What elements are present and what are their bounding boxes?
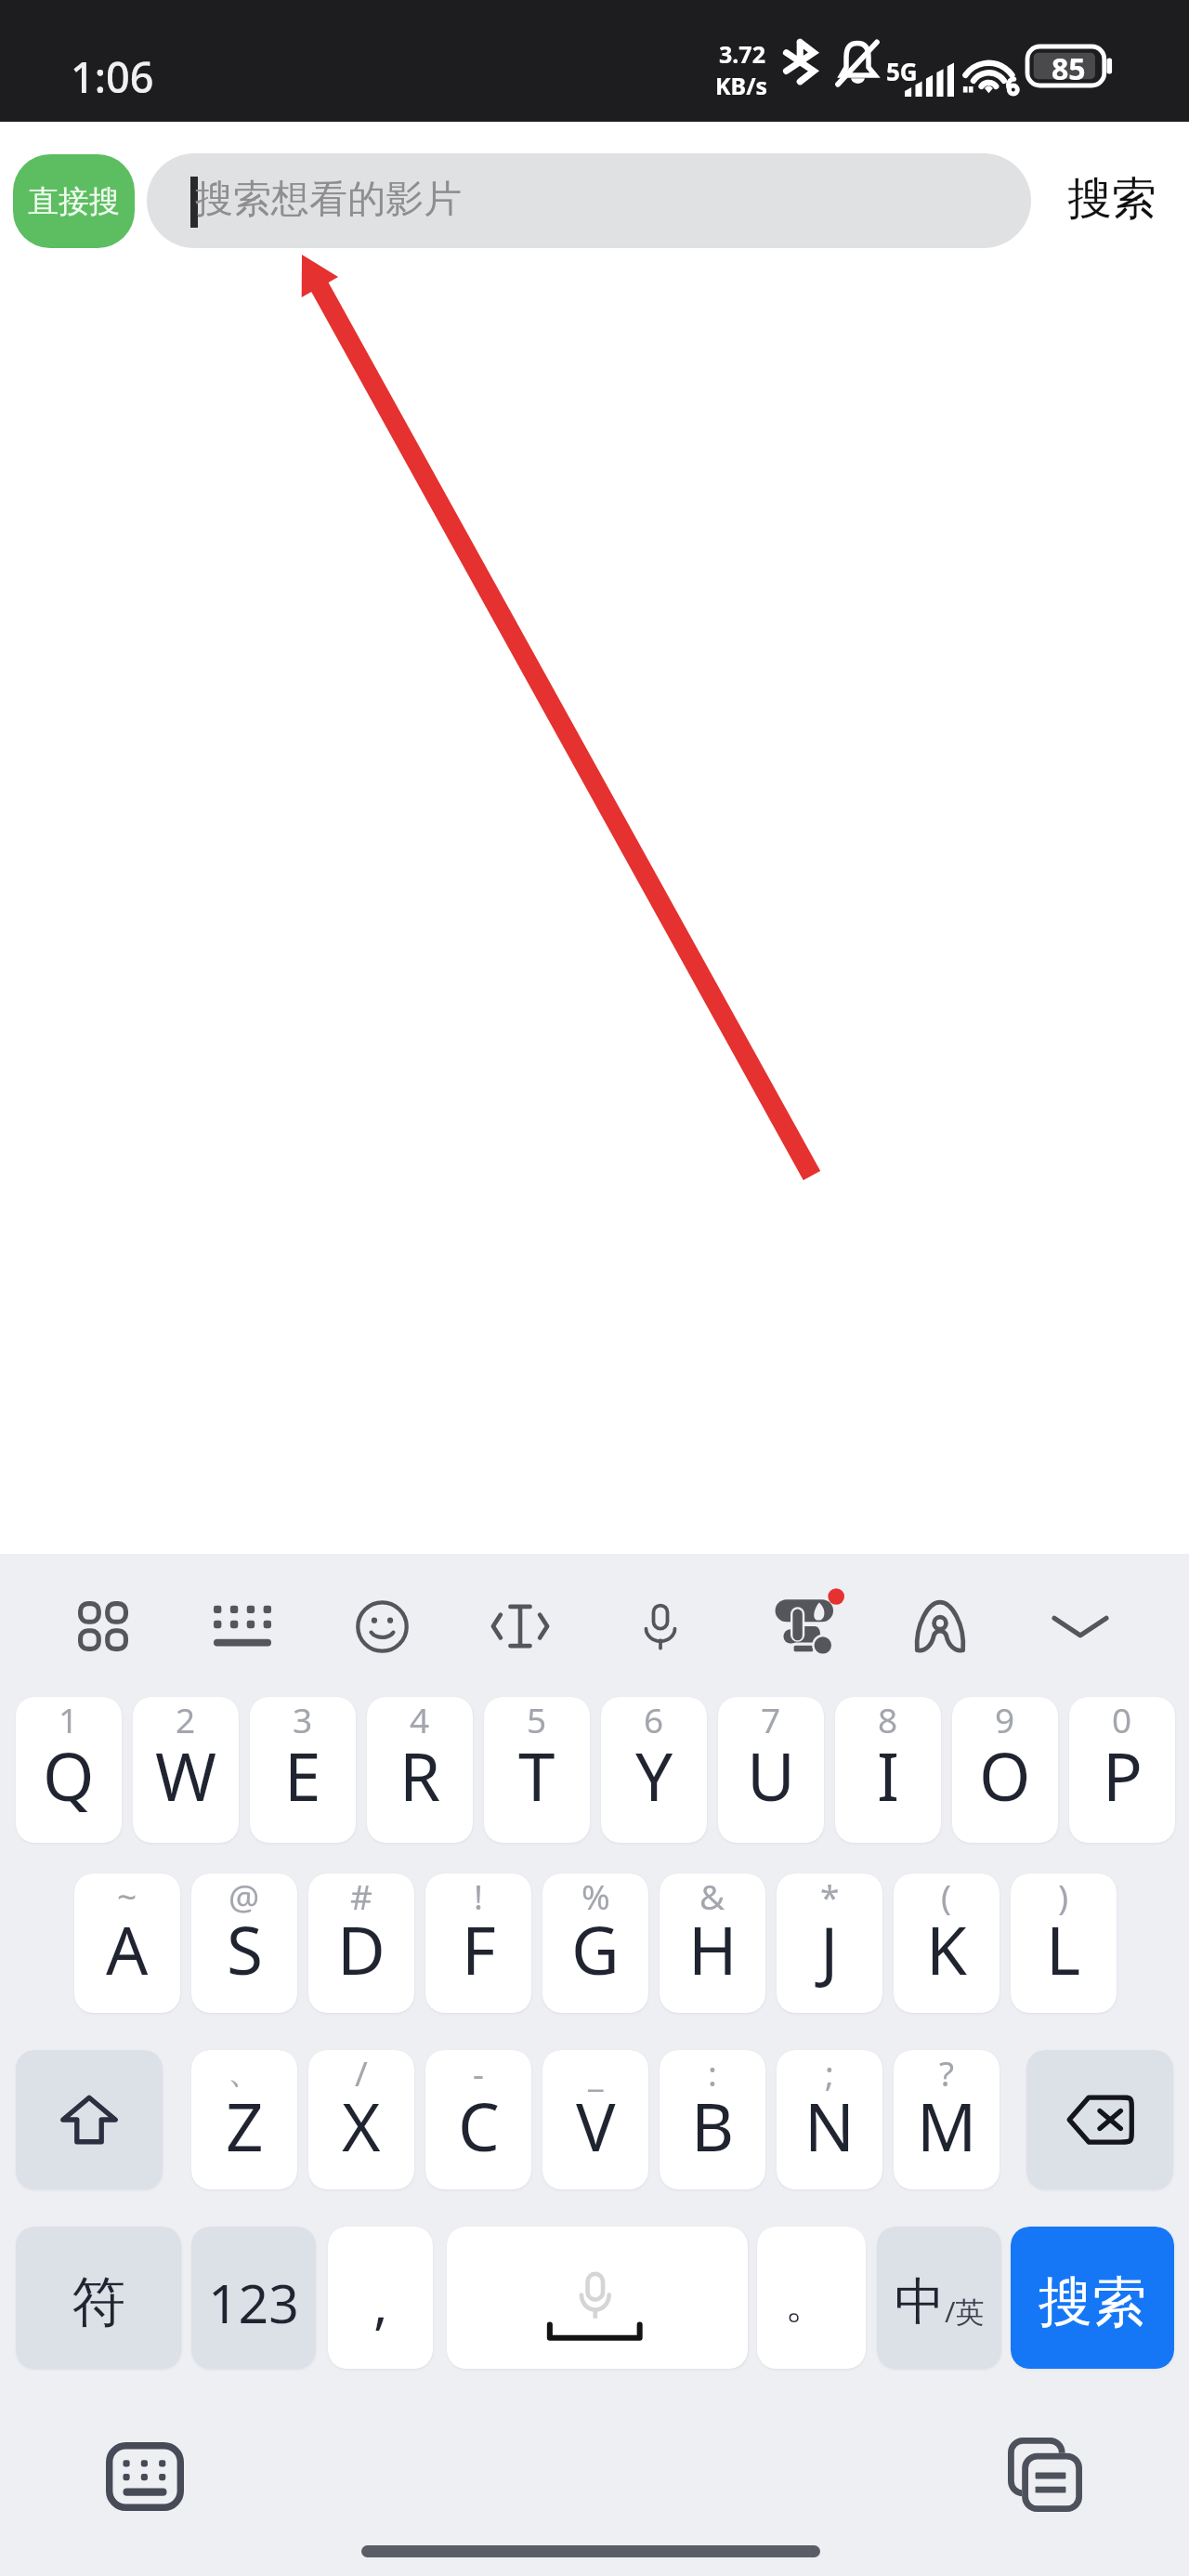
button[interactable]: ? (894, 2050, 1000, 2189)
staticText: 搜索 (1067, 171, 1156, 227)
staticText: 搜索 (1039, 2268, 1146, 2336)
staticText: @ (229, 1873, 260, 1919)
staticText: H (688, 1904, 738, 1994)
button[interactable]: Keyboard layout (192, 1576, 293, 1676)
staticText: # (350, 1873, 372, 1919)
button[interactable]: 123 (191, 2227, 316, 2369)
staticText: Z (226, 2081, 264, 2171)
staticText: G (571, 1904, 620, 1994)
button[interactable]: ; (777, 2050, 882, 2189)
button[interactable]: 7 (718, 1697, 824, 1843)
button[interactable]: Voice input (610, 1576, 711, 1676)
button[interactable]: 3 (250, 1697, 356, 1843)
staticText: Q (43, 1730, 95, 1820)
button[interactable]: / (308, 2050, 414, 2189)
staticText: : (708, 2050, 717, 2096)
staticText: K (926, 1904, 967, 1994)
staticText: 85 (1052, 48, 1086, 89)
staticText: L (1046, 1904, 1081, 1994)
button[interactable]: 4 (367, 1697, 473, 1843)
staticText: V (576, 2081, 616, 2171)
staticText: ( (941, 1873, 952, 1919)
button[interactable]: ~ (74, 1873, 180, 2013)
button[interactable]: , (328, 2227, 433, 2369)
staticText: J (820, 1904, 839, 1994)
staticText: D (337, 1904, 385, 1994)
button[interactable]: 搜索想看的影片 (147, 153, 1031, 248)
staticText: 。 (785, 2277, 828, 2331)
staticText: 符 (72, 2268, 125, 2336)
staticText: 1 (59, 1697, 79, 1742)
button[interactable]: 、 (191, 2050, 297, 2189)
staticText: P (1103, 1730, 1143, 1820)
button[interactable]: Space (447, 2227, 748, 2369)
staticText: /英 (945, 2292, 985, 2331)
button[interactable]: * (777, 1873, 882, 2013)
staticText: R (399, 1730, 441, 1820)
button[interactable]: % (542, 1873, 648, 2013)
staticText: 1:06 (71, 48, 154, 105)
button[interactable]: ! (425, 1873, 531, 2013)
button[interactable]: Backspace (1026, 2050, 1173, 2189)
staticText: O (979, 1730, 1031, 1820)
staticText: E (284, 1730, 321, 1820)
button[interactable]: 8 (835, 1697, 941, 1843)
button[interactable]: @ (191, 1873, 297, 2013)
staticText: 、 (228, 2050, 262, 2093)
button[interactable]: Hide keyboard (98, 2430, 191, 2523)
staticText: _ (588, 2050, 604, 2096)
button[interactable]: Account (890, 1576, 990, 1676)
staticText: I (877, 1730, 900, 1820)
button[interactable]: 6 (601, 1697, 707, 1843)
staticText: 搜索想看的影片 (195, 176, 462, 224)
staticText: Y (635, 1730, 673, 1820)
button[interactable]: 5 (484, 1697, 590, 1843)
button[interactable]: Hide keyboard (1030, 1576, 1130, 1676)
button[interactable]: : (660, 2050, 765, 2189)
button[interactable]: 9 (952, 1697, 1058, 1843)
staticText: 7 (761, 1697, 781, 1742)
button[interactable]: Clipboard (999, 2428, 1091, 2521)
button[interactable]: 搜索 (1067, 171, 1156, 227)
button[interactable]: 0 (1069, 1697, 1175, 1843)
button[interactable]: Stickers (750, 1576, 850, 1676)
button[interactable]: 2 (133, 1697, 239, 1843)
button[interactable]: Shift (16, 2050, 163, 2189)
staticText: 5 (527, 1697, 547, 1742)
staticText: 中 (895, 2270, 945, 2333)
staticText: 9 (995, 1697, 1015, 1742)
button[interactable]: 符 (16, 2227, 181, 2369)
staticText: 3.72 (719, 38, 765, 70)
staticText: C (458, 2081, 500, 2171)
staticText: 6 (644, 1697, 664, 1742)
button[interactable]: _ (542, 2050, 648, 2189)
staticText: 直接搜 (28, 182, 120, 221)
staticText: KB/s (715, 70, 768, 101)
staticText: 123 (208, 2267, 299, 2339)
staticText: , (373, 2266, 388, 2339)
staticText: ; (825, 2050, 834, 2096)
staticText: 0 (1112, 1697, 1132, 1742)
button[interactable]: 。 (757, 2227, 866, 2369)
staticText: 8 (878, 1697, 898, 1742)
button[interactable]: 搜索 (1011, 2227, 1174, 2369)
button[interactable]: Keyboard apps (53, 1576, 153, 1676)
staticText: 2 (176, 1697, 196, 1742)
button[interactable]: # (308, 1873, 414, 2013)
button[interactable]: - (425, 2050, 531, 2189)
button[interactable]: 直接搜 (13, 154, 135, 248)
staticText: ! (474, 1873, 483, 1919)
staticText: X (342, 2081, 381, 2171)
staticText: * (820, 1873, 840, 1919)
staticText: % (581, 1873, 610, 1919)
button[interactable]: ) (1011, 1873, 1117, 2013)
staticText: - (473, 2050, 484, 2096)
button[interactable]: 中 (877, 2227, 1001, 2369)
staticText: W (155, 1730, 217, 1820)
staticText: U (747, 1730, 795, 1820)
button[interactable]: Text editing (470, 1576, 570, 1676)
button[interactable]: ( (894, 1873, 1000, 2013)
button[interactable]: Emoji (332, 1576, 432, 1676)
button[interactable]: & (660, 1873, 765, 2013)
button[interactable]: 1 (16, 1697, 122, 1843)
